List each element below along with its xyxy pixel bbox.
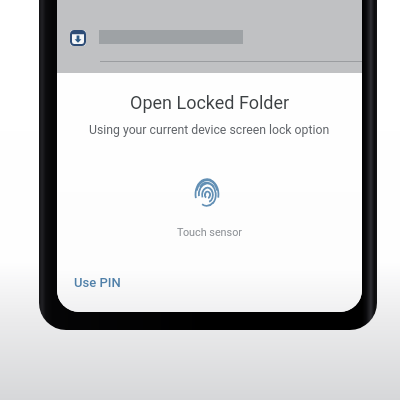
staticText: Touch sensor: [177, 226, 242, 239]
button[interactable]: Install app: [65, 25, 91, 51]
button[interactable]: Touch fingerprint sensor: [174, 170, 240, 240]
staticText: Open Locked Folder: [130, 92, 290, 113]
staticText: Using your current device screen lock op…: [89, 123, 330, 137]
staticText: Use PIN: [74, 275, 121, 290]
button[interactable]: Use PIN: [64, 267, 131, 298]
